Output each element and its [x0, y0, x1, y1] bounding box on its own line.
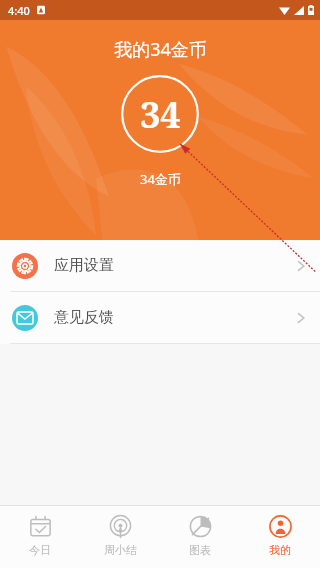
staticText: 应用设置 — [54, 256, 114, 275]
staticText: 周小结 — [104, 543, 137, 557]
staticText: 4:40 — [8, 3, 30, 18]
button[interactable]: 今日 — [0, 506, 80, 568]
staticText: 我的34金币 — [114, 37, 207, 62]
button[interactable]: 我的 — [240, 506, 320, 568]
button[interactable]: 图表 — [160, 506, 240, 568]
staticText: 今日 — [29, 543, 51, 557]
staticText: 34金币 — [140, 170, 181, 188]
staticText: 我的 — [269, 543, 291, 557]
staticText: 图表 — [189, 543, 211, 557]
button[interactable]: 意见反馈 — [0, 292, 320, 343]
button[interactable]: 周小结 — [80, 506, 160, 568]
button[interactable]: 应用设置 — [0, 240, 320, 291]
staticText: 34 — [140, 90, 181, 139]
staticText: 意见反馈 — [54, 308, 114, 327]
